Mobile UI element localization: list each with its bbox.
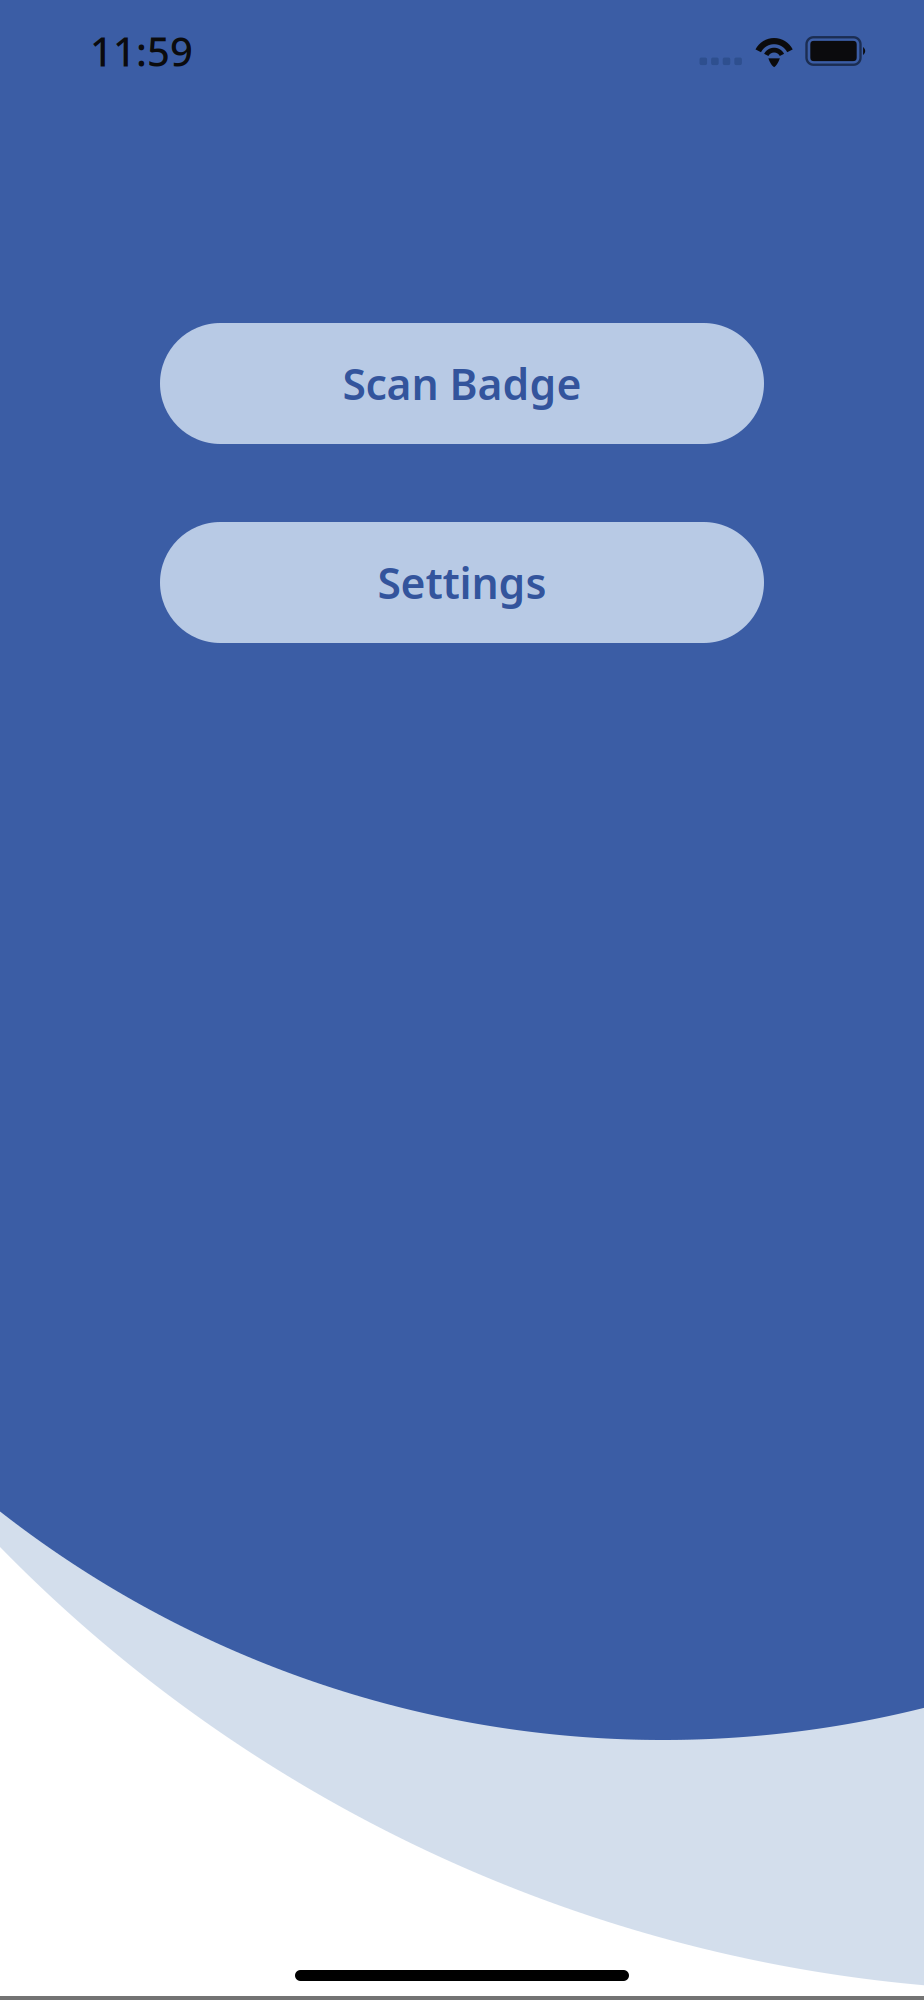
button[interactable]: Settings (160, 522, 764, 643)
staticText: Scan Badge (342, 355, 581, 412)
button[interactable]: Scan Badge (160, 323, 764, 444)
staticText: Settings (377, 554, 546, 611)
staticText: 11:59 (90, 24, 193, 77)
